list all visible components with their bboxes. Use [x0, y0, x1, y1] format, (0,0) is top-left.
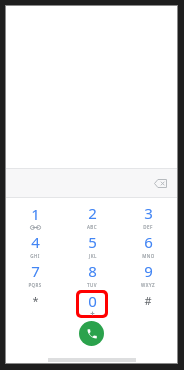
button[interactable]: 3	[121, 202, 175, 231]
staticText: ABC	[87, 224, 97, 230]
button[interactable]: 8	[65, 260, 119, 289]
button[interactable]: 2	[65, 202, 119, 231]
staticText: TUV	[87, 282, 97, 288]
button[interactable]: 9	[121, 260, 175, 289]
staticText: 3	[144, 203, 153, 223]
button[interactable]: Backspace	[149, 173, 171, 193]
staticText: DEF	[143, 224, 153, 230]
staticText: MNO	[142, 253, 155, 259]
staticText: 7	[31, 261, 40, 281]
staticText: 6	[144, 232, 153, 252]
staticText: GHI	[30, 253, 40, 259]
staticText: WXYZ	[141, 282, 155, 288]
staticText: *	[32, 293, 39, 308]
staticText: 4	[31, 232, 40, 252]
staticText: 5	[88, 232, 97, 252]
button[interactable]: 6	[121, 231, 175, 260]
button[interactable]: 0	[65, 289, 119, 318]
button[interactable]: #	[121, 289, 175, 318]
staticText: 0	[88, 291, 97, 311]
button[interactable]: 4	[8, 231, 62, 260]
button[interactable]: 7	[8, 260, 62, 289]
staticText: 9	[144, 261, 153, 281]
staticText: JKL	[89, 253, 97, 259]
staticText: 2	[88, 203, 97, 223]
button[interactable]: Call	[79, 321, 104, 346]
button[interactable]: *	[8, 289, 62, 318]
staticText: 8	[88, 261, 97, 281]
button[interactable]: 1	[8, 202, 62, 231]
staticText: PQRS	[28, 282, 42, 288]
staticText: #	[144, 293, 152, 308]
button[interactable]: 5	[65, 231, 119, 260]
staticText: 1	[31, 204, 40, 224]
